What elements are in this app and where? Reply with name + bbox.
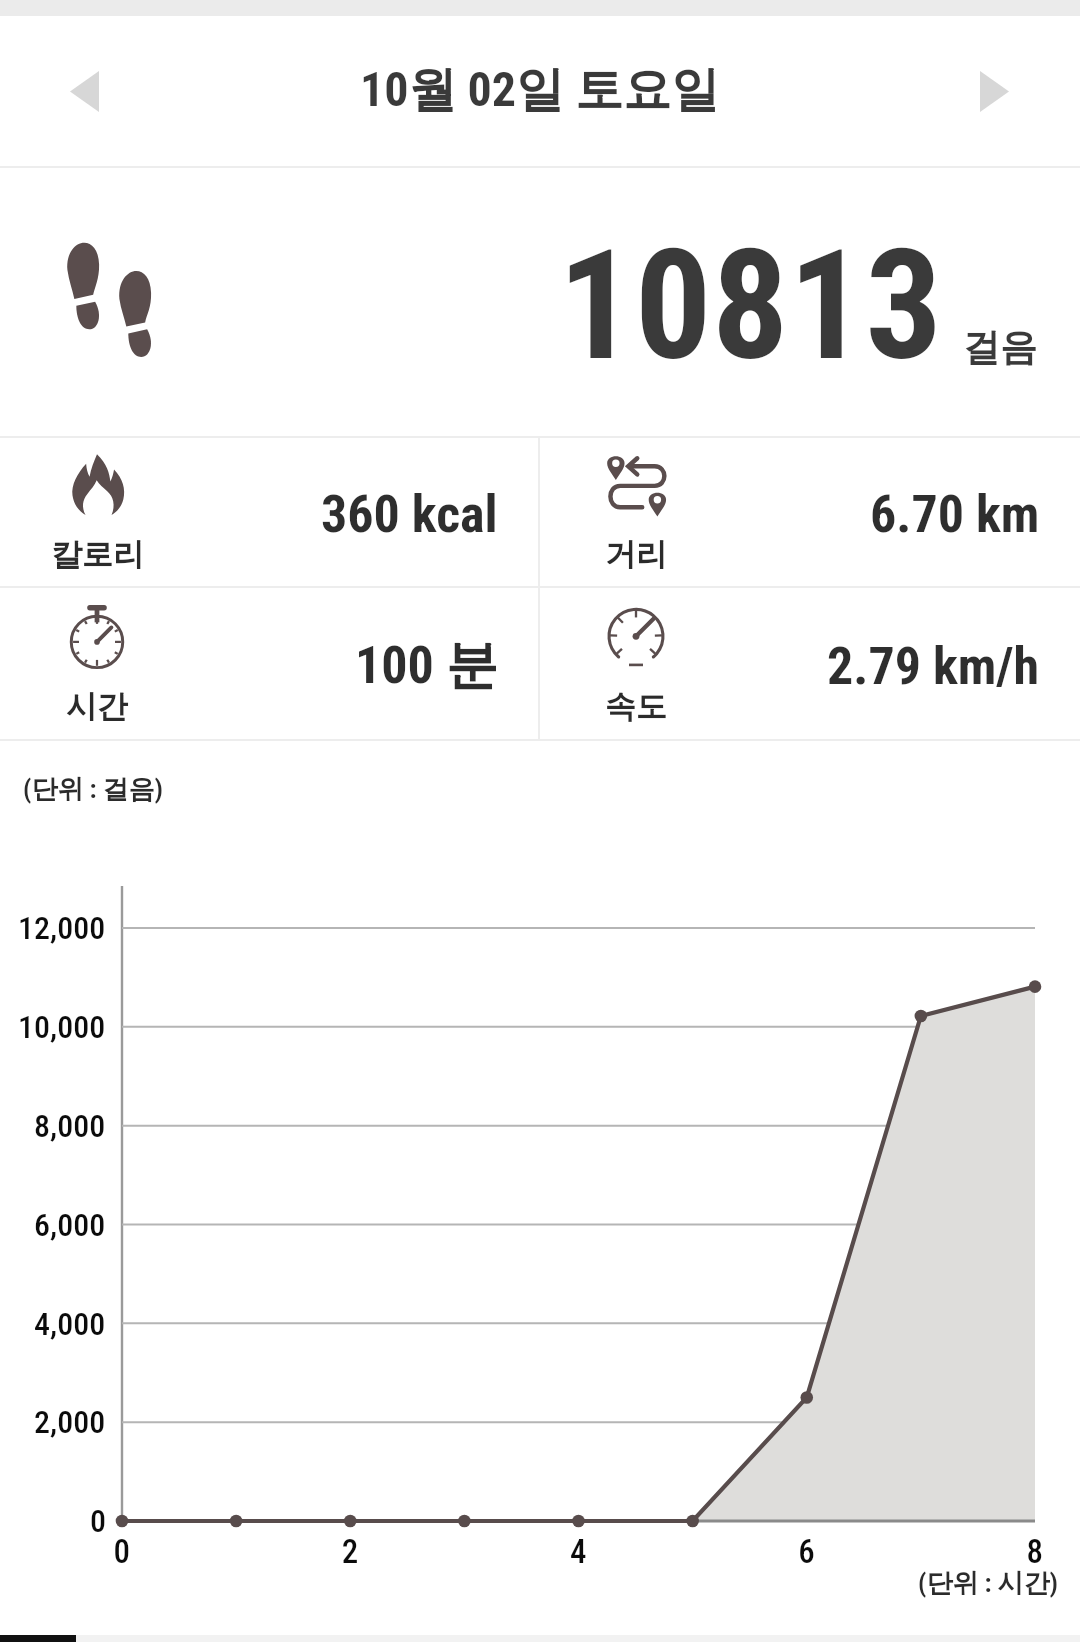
staticText: 100 분 (355, 633, 498, 699)
staticText: 칼로리 (51, 535, 144, 574)
staticText: 걸음 (963, 324, 1037, 371)
staticText: 10월 02일 토요일 (360, 60, 720, 120)
staticText: 6.70 km (870, 484, 1040, 545)
staticText: 360 kcal (321, 484, 498, 545)
button[interactable]: 거리 (540, 436, 1080, 586)
staticText: 2.79 km/h (827, 636, 1040, 697)
button[interactable]: 칼로리 (0, 436, 538, 586)
button[interactable]: 시간 (0, 588, 538, 738)
staticText: 속도 (605, 687, 667, 726)
button[interactable]: Next day (948, 45, 1040, 137)
staticText: 거리 (605, 535, 667, 574)
button[interactable]: 10813 (0, 166, 1080, 434)
button[interactable]: Previous day (38, 45, 130, 137)
staticText: (단위 : 걸음) (23, 773, 163, 806)
button[interactable]: 속도 (540, 588, 1080, 738)
staticText: 10813 (558, 217, 943, 395)
staticText: 시간 (66, 687, 128, 726)
